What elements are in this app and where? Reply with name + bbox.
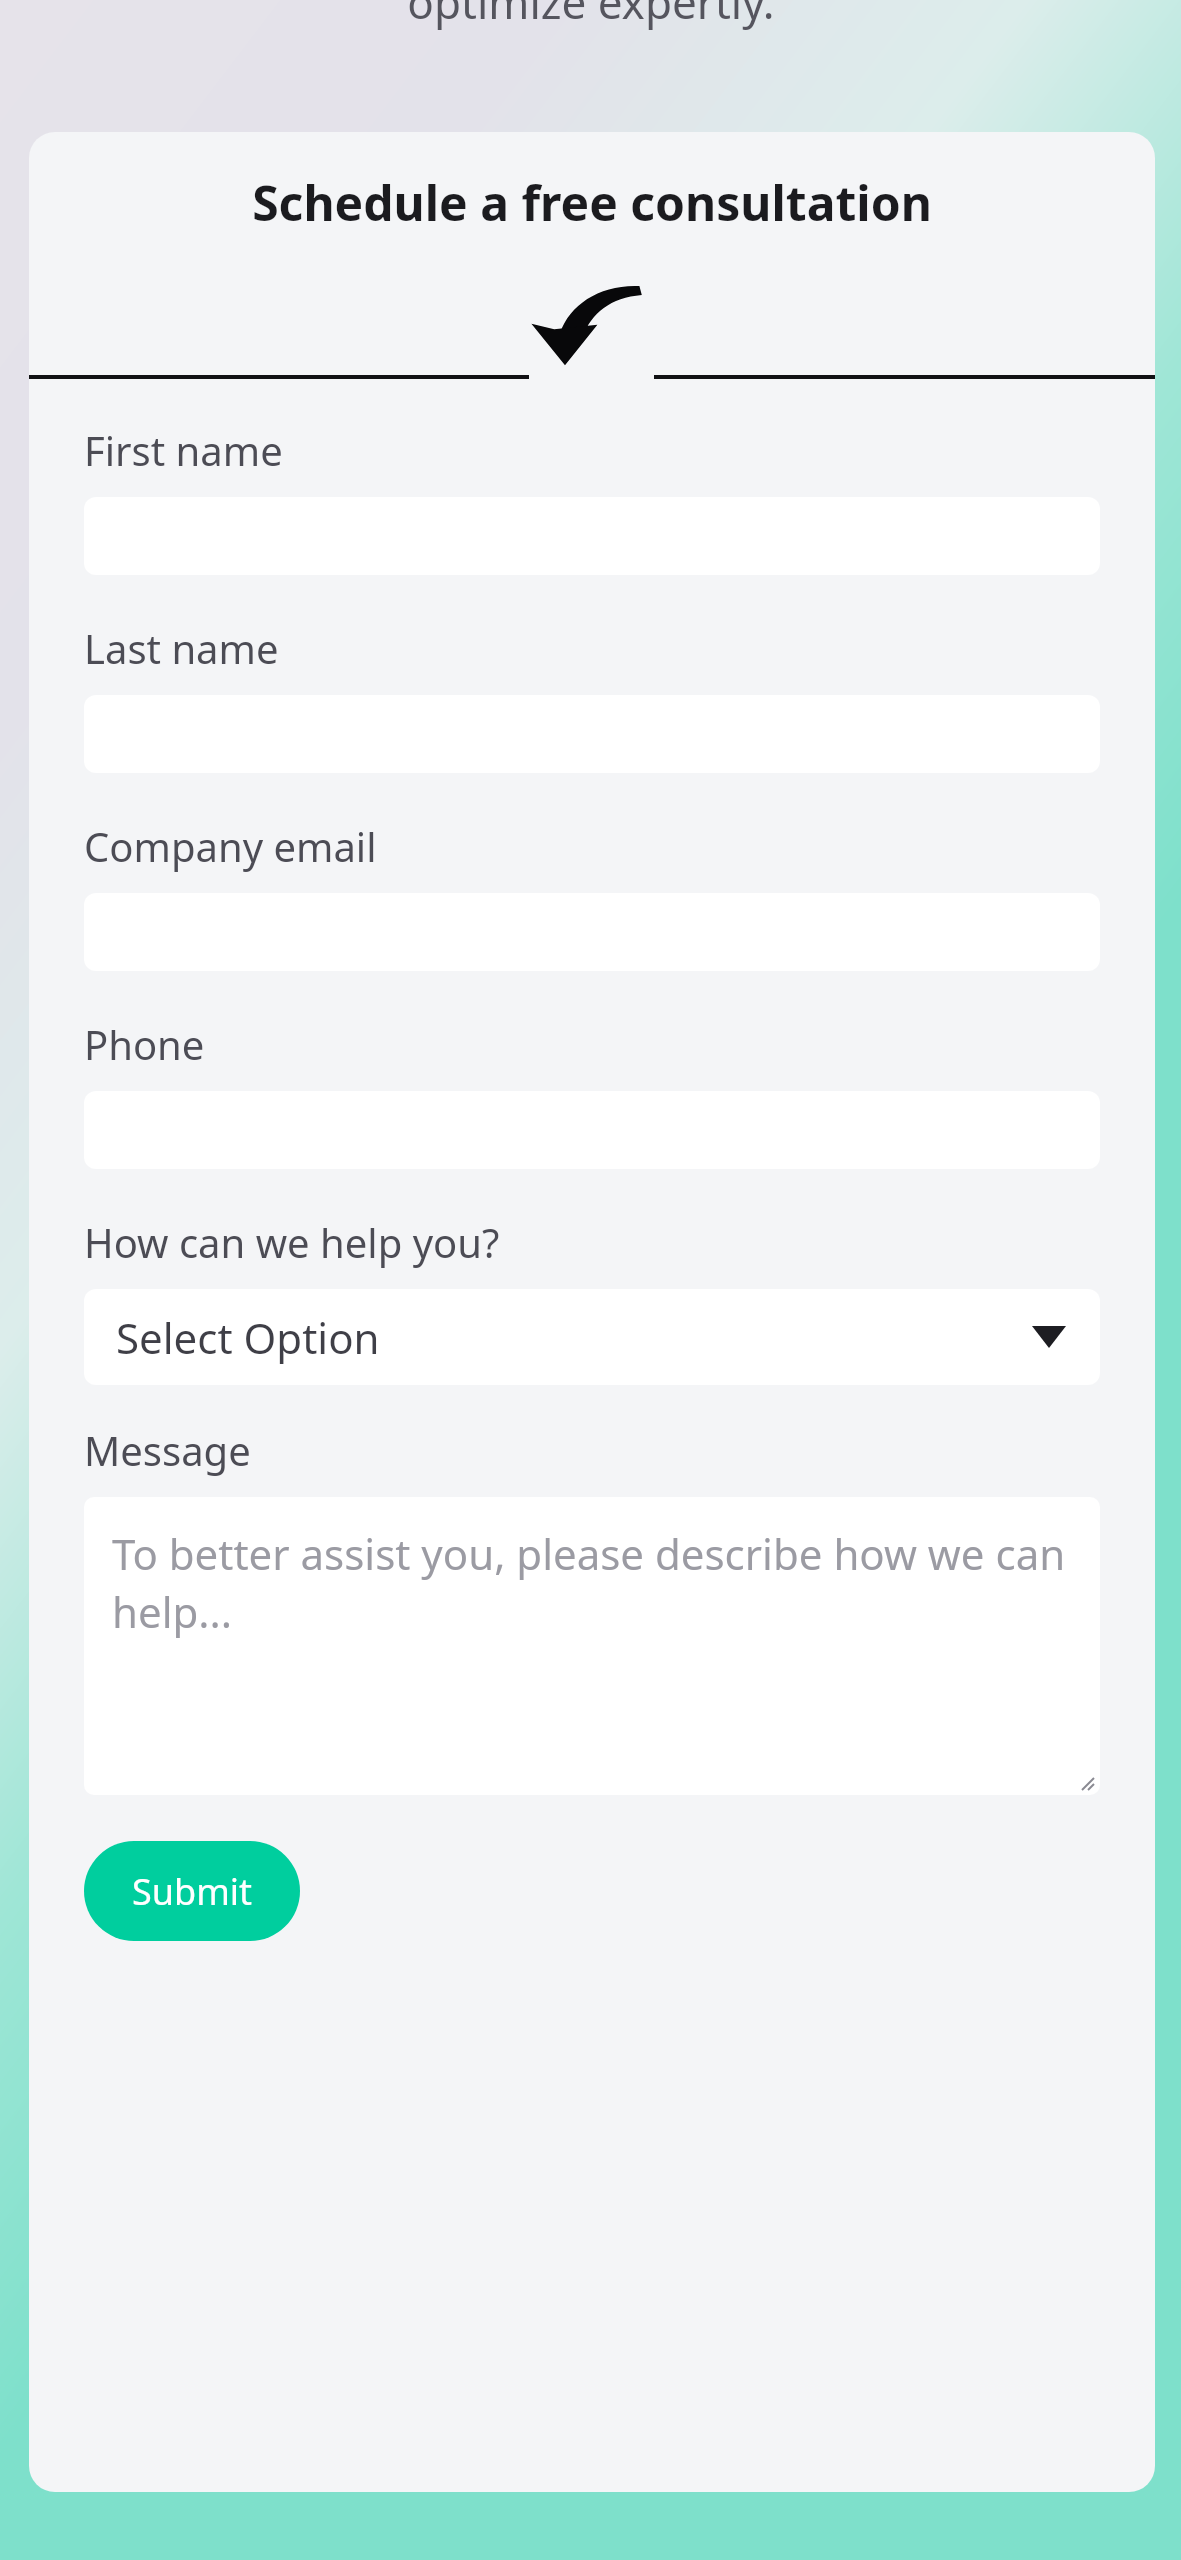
staticText: Last name [84,621,279,675]
staticText: Schedule a free consultation [252,170,932,235]
button[interactable]: To better assist you, please describe ho… [84,1497,1100,1795]
other: Arrow pointing to form [529,277,649,367]
staticText: Submit [132,1867,253,1916]
staticText: Select Option [116,1309,380,1366]
staticText: Phone [84,1017,205,1071]
staticText: To better assist you, please describe ho… [112,1525,1074,1640]
staticText: First name [84,423,283,477]
staticText: Message [84,1423,251,1477]
button[interactable]: Submit [84,1841,300,1941]
staticText: How can we help you? [84,1215,500,1269]
staticText: optimize expertly. [407,0,775,32]
staticText: Company email [84,819,377,873]
button[interactable]: Select Option [84,1289,1100,1385]
